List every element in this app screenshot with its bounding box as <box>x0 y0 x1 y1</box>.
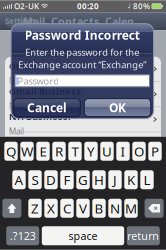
button[interactable]: K <box>124 170 138 189</box>
staticText: Password Incorrect <box>25 27 140 43</box>
staticText: Z <box>31 199 39 217</box>
staticText: Mail <box>9 126 24 137</box>
staticText: A <box>14 171 23 189</box>
staticText: return <box>127 229 159 243</box>
staticText: N <box>110 199 120 217</box>
staticText: F <box>63 171 70 189</box>
button[interactable]: I <box>116 142 130 161</box>
button[interactable]: Delete <box>145 199 164 218</box>
staticText: Add Account... <box>9 135 76 148</box>
staticText: X <box>47 199 55 217</box>
staticText: U <box>102 142 112 160</box>
button[interactable]: U <box>100 142 114 161</box>
button[interactable]: NH Business. <box>5 107 161 132</box>
button[interactable]: B <box>92 199 106 218</box>
staticText: I <box>120 142 125 160</box>
button[interactable]: J <box>108 170 122 189</box>
button[interactable]: O <box>132 142 146 161</box>
staticText: Password <box>17 75 59 87</box>
button[interactable]: H <box>92 170 106 189</box>
staticText: O2-UK <box>14 1 39 11</box>
staticText: E <box>39 142 46 160</box>
button[interactable]: A <box>12 170 26 189</box>
staticText: Mail, Calendars <box>9 101 65 111</box>
button[interactable]: M <box>124 199 138 218</box>
staticText: P <box>151 142 159 160</box>
button[interactable]: space <box>42 226 124 245</box>
button[interactable]: F <box>60 170 74 189</box>
button[interactable]: G <box>76 170 90 189</box>
button[interactable]: T <box>68 142 82 161</box>
button[interactable]: OK <box>84 99 151 117</box>
button[interactable]: L <box>140 170 154 189</box>
button[interactable]: S <box>28 170 42 189</box>
staticText: H <box>94 171 104 189</box>
button[interactable]: W <box>20 142 34 161</box>
button[interactable]: Cancel <box>14 99 80 117</box>
staticText: L <box>143 171 150 189</box>
staticText: Exchange account “Exchange” <box>18 58 146 71</box>
button[interactable]: Add Account... <box>5 132 161 157</box>
button[interactable]: Gmail Business. <box>5 82 161 106</box>
staticText: K <box>127 171 135 189</box>
button[interactable]: Shift <box>2 199 21 218</box>
staticText: T <box>71 142 78 160</box>
staticText: O <box>134 142 144 160</box>
staticText: Mail, Contacts, Calen... <box>23 14 143 28</box>
staticText: D <box>46 171 56 189</box>
button[interactable]: Gmail. <box>5 57 161 81</box>
button[interactable]: X <box>44 199 58 218</box>
staticText: Gmail. <box>9 60 40 72</box>
button[interactable]: Y <box>84 142 98 161</box>
staticText: V <box>79 199 87 217</box>
staticText: Q <box>6 142 16 160</box>
staticText: 80% <box>133 1 150 11</box>
staticText: Settings <box>5 16 36 26</box>
button[interactable]: Z <box>28 199 42 218</box>
button[interactable]: Settings <box>0 12 34 30</box>
staticText: NH Business. <box>9 110 71 122</box>
button[interactable]: P <box>148 142 162 161</box>
staticText: Y <box>87 142 95 160</box>
staticText: Gmail Business. <box>9 85 84 97</box>
staticText: W <box>21 142 33 160</box>
button[interactable]: Q <box>4 142 18 161</box>
staticText: Mail, Calendars, Notes <box>9 76 92 86</box>
button[interactable]: return <box>127 226 160 245</box>
staticText: Enter the password for the <box>25 46 139 58</box>
staticText: OK <box>109 100 126 115</box>
staticText: C <box>63 199 71 217</box>
staticText: space <box>68 229 97 243</box>
staticText: J <box>113 171 117 189</box>
button[interactable]: E <box>36 142 50 161</box>
button[interactable]: R <box>52 142 66 161</box>
staticText: .?123 <box>10 229 36 243</box>
button[interactable]: N <box>108 199 122 218</box>
staticText: G <box>78 171 88 189</box>
staticText: R <box>55 142 63 160</box>
staticText: Cancel <box>27 100 67 115</box>
button[interactable]: V <box>76 199 90 218</box>
button[interactable]: C <box>60 199 74 218</box>
staticText: S <box>31 171 38 189</box>
staticText: M <box>125 199 137 217</box>
button[interactable]: D <box>44 170 58 189</box>
button[interactable]: .?123 <box>6 226 39 245</box>
staticText: B <box>94 199 103 217</box>
staticText: 00:20 <box>77 1 99 11</box>
